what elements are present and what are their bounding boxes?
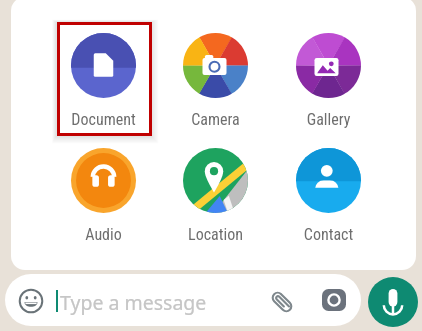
button[interactable]: Camera — [322, 289, 346, 311]
button[interactable]: Camera — [167, 30, 264, 129]
button[interactable] — [5, 274, 361, 326]
staticText: Camera — [167, 110, 264, 129]
staticText: Gallery — [280, 110, 377, 129]
button[interactable]: Attach — [267, 287, 297, 317]
button[interactable]: Document — [55, 30, 152, 129]
button[interactable]: Voice message — [368, 277, 418, 327]
button[interactable]: Gallery — [280, 30, 377, 129]
staticText: Type a message — [60, 289, 207, 316]
button[interactable]: Emoji — [18, 288, 44, 314]
button[interactable]: Location — [167, 145, 264, 244]
staticText: Location — [167, 225, 264, 244]
staticText: Contact — [280, 225, 377, 244]
button[interactable]: Contact — [280, 145, 377, 244]
button[interactable]: Audio — [55, 145, 152, 244]
staticText: Document — [55, 110, 152, 129]
staticText: Audio — [55, 225, 152, 244]
